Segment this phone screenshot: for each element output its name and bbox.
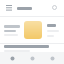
button[interactable] bbox=[0, 44, 64, 52]
button[interactable]: Featured image bbox=[24, 21, 42, 39]
button[interactable]: Home bbox=[4, 52, 20, 64]
button[interactable]: Menu bbox=[4, 3, 14, 13]
button[interactable]: Featured image bbox=[0, 17, 64, 43]
button[interactable]: Search bbox=[50, 3, 60, 13]
button[interactable]: Library bbox=[24, 52, 40, 64]
button[interactable]: Profile bbox=[44, 52, 60, 64]
